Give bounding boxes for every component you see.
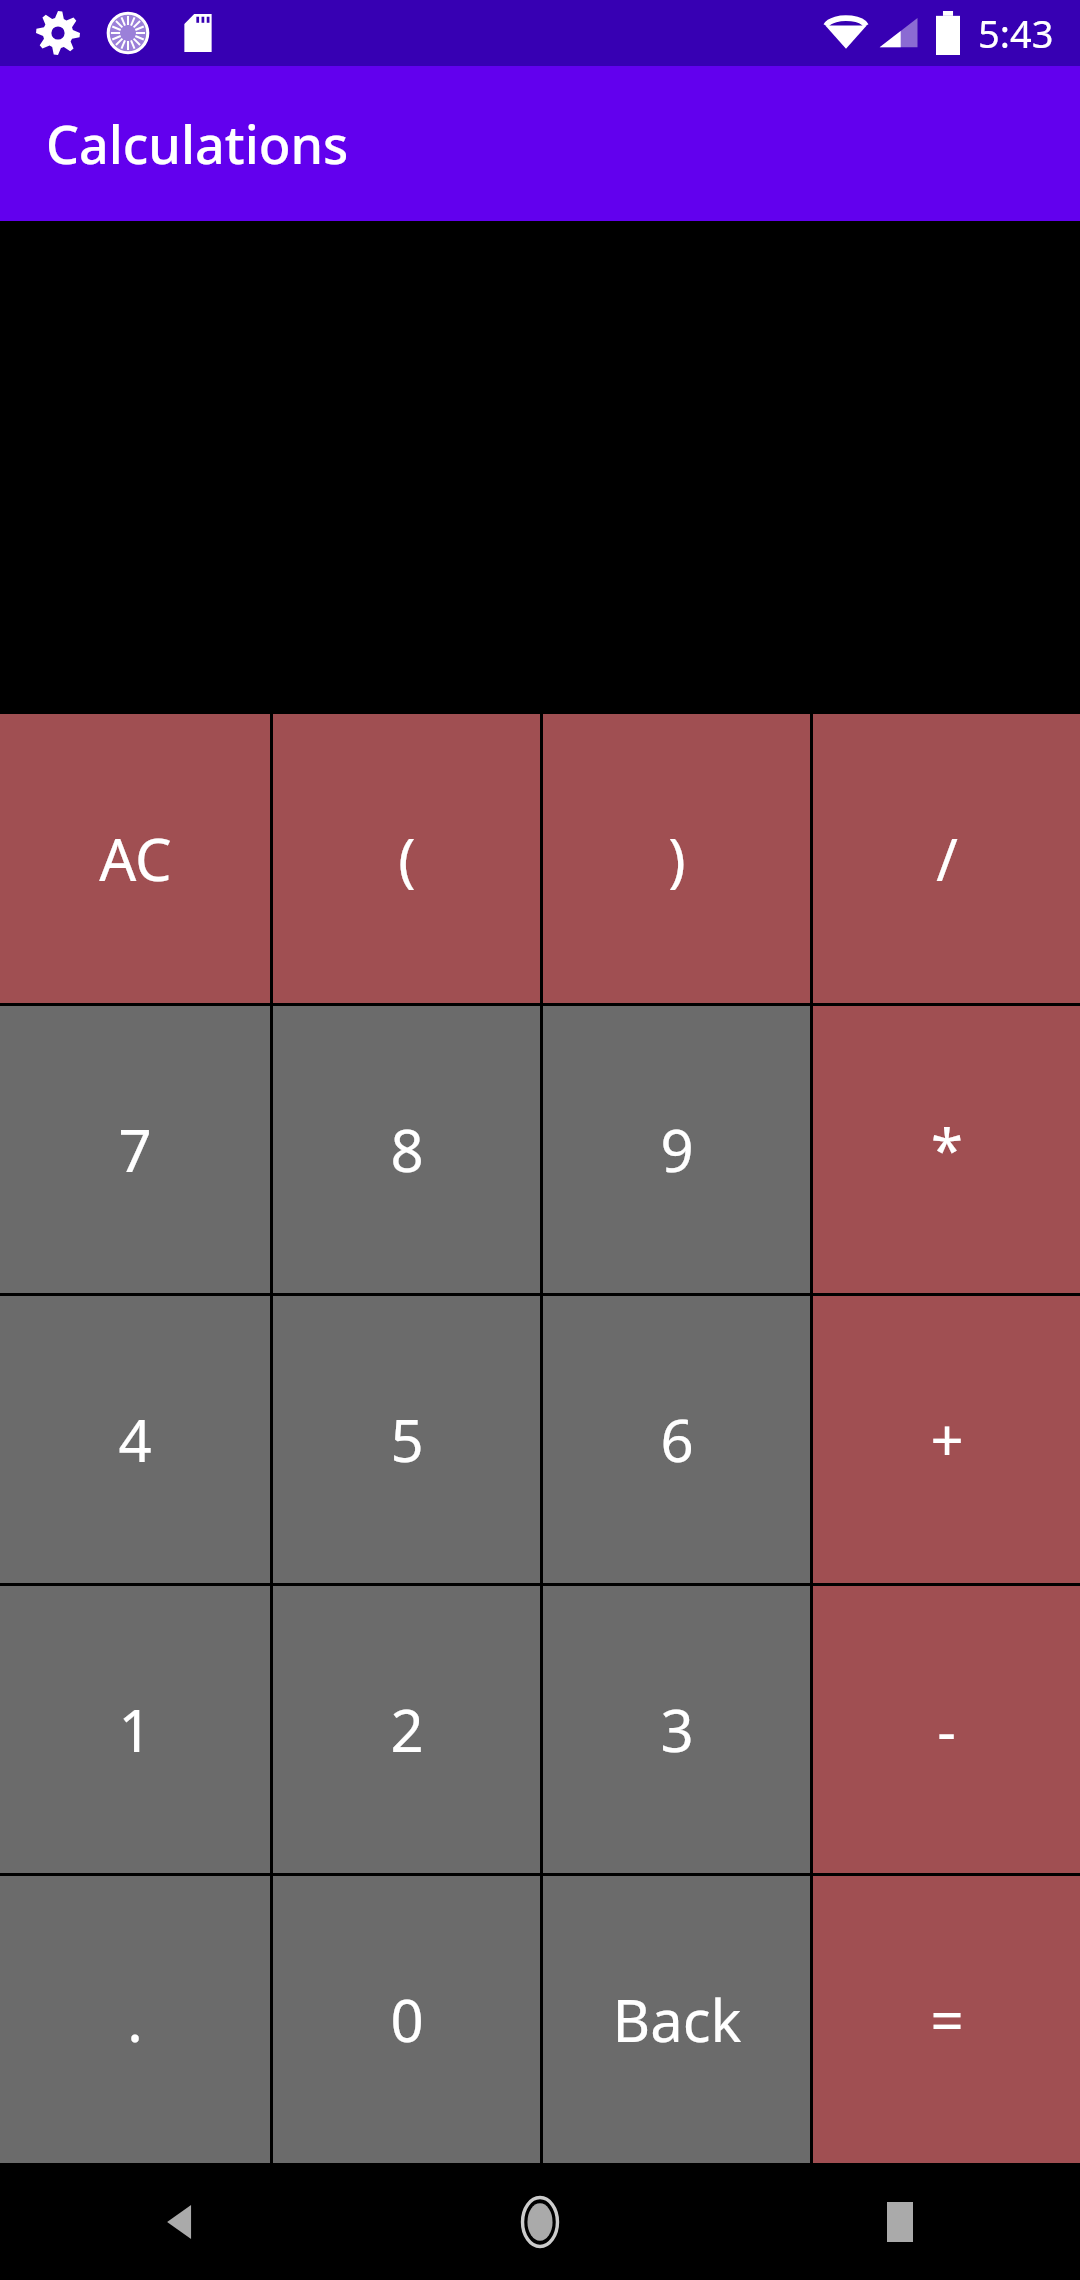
button[interactable]: 6	[543, 1296, 810, 1583]
staticText: *	[931, 1110, 963, 1189]
button[interactable]: 1	[0, 1586, 270, 1873]
button[interactable]: )	[543, 714, 810, 1003]
staticText: Calculations	[46, 108, 349, 179]
staticText: +	[930, 1400, 964, 1479]
button[interactable]: 5	[273, 1296, 540, 1583]
staticText: 1	[118, 1690, 152, 1769]
staticText: 3	[660, 1690, 694, 1769]
staticText: 4	[118, 1400, 152, 1479]
button[interactable]: Back	[543, 1876, 810, 2163]
button[interactable]: +	[813, 1296, 1080, 1583]
button[interactable]: AC	[0, 714, 270, 1003]
button[interactable]: =	[813, 1876, 1080, 2163]
staticText: /	[936, 819, 958, 898]
staticText: AC	[99, 819, 172, 898]
button[interactable]: 9	[543, 1006, 810, 1293]
staticText: 9	[660, 1110, 694, 1189]
button[interactable]: 0	[273, 1876, 540, 2163]
staticText: 2	[390, 1690, 424, 1769]
staticText: (	[398, 819, 416, 898]
staticText: =	[930, 1980, 964, 2059]
button[interactable]: Home	[360, 2163, 720, 2280]
staticText: 6	[660, 1400, 694, 1479]
staticText: 5:43	[978, 7, 1054, 59]
staticText: )	[668, 819, 686, 898]
button[interactable]: 8	[273, 1006, 540, 1293]
button[interactable]: 7	[0, 1006, 270, 1293]
staticText: 7	[118, 1110, 152, 1189]
button[interactable]: (	[273, 714, 540, 1003]
staticText: 8	[390, 1110, 424, 1189]
staticText: .	[127, 1980, 143, 2059]
button[interactable]: Recent apps	[720, 2163, 1080, 2280]
staticText: 0	[390, 1980, 424, 2059]
button[interactable]: .	[0, 1876, 270, 2163]
button[interactable]: Back	[0, 2163, 360, 2280]
button[interactable]: -	[813, 1586, 1080, 1873]
button[interactable]: 3	[543, 1586, 810, 1873]
button[interactable]: 4	[0, 1296, 270, 1583]
button[interactable]: /	[813, 714, 1080, 1003]
staticText: 5	[390, 1400, 424, 1479]
button[interactable]: *	[813, 1006, 1080, 1293]
staticText: -	[937, 1690, 956, 1769]
button[interactable]: 2	[273, 1586, 540, 1873]
staticText: Back	[612, 1980, 742, 2059]
